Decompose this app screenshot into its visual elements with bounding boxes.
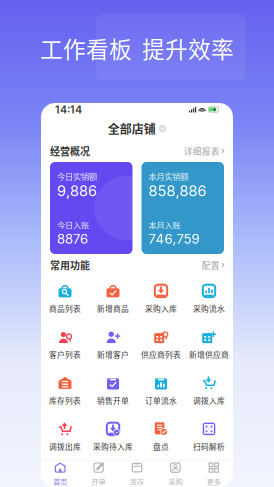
button[interactable]: 供应商列表 [137, 322, 185, 368]
staticText: 今日入账 [57, 219, 89, 231]
staticText: 商品列表 [49, 303, 81, 314]
staticText: 库存列表 [49, 395, 81, 406]
button[interactable]: 调拨出库 [41, 414, 89, 460]
staticText: 采购流水 [193, 303, 225, 314]
staticText: 采购入库 [145, 303, 177, 314]
staticText: 调拨入库 [193, 395, 225, 406]
button[interactable]: 配置 [202, 259, 224, 271]
button[interactable]: 本月实销额 [141, 162, 224, 254]
staticText: 采购待入库 [93, 441, 133, 452]
staticText: 销售开单 [97, 395, 129, 406]
staticText: 采购 [168, 476, 182, 486]
staticText: 首页 [53, 476, 67, 486]
button[interactable]: 销售开单 [89, 368, 137, 414]
staticText: 新增供应商 [189, 349, 229, 360]
staticText: 盘点 [153, 441, 169, 452]
button[interactable]: 采购待入库 [89, 414, 137, 460]
staticText: 新增客户 [97, 349, 129, 360]
staticText: 746,759 [148, 231, 199, 247]
button[interactable]: 新增商品 [89, 276, 137, 322]
button[interactable]: 订单流水 [137, 368, 185, 414]
staticText: 全部店铺 [108, 120, 156, 137]
button[interactable]: 开单 [79, 461, 118, 487]
button[interactable]: 更多 [195, 461, 233, 487]
button[interactable]: 库存 [118, 461, 156, 487]
staticText: 客户列表 [49, 349, 81, 360]
button[interactable]: 扫码解析 [185, 414, 233, 460]
staticText: 今日实销额 [57, 170, 97, 182]
staticText: 常用功能 [50, 258, 90, 272]
staticText: 开单 [92, 476, 106, 486]
staticText: 14:14 [55, 103, 82, 116]
button[interactable]: 调拨入库 [185, 368, 233, 414]
button[interactable]: 全部店铺 [41, 117, 233, 140]
staticText: 本月实销额 [148, 170, 188, 182]
staticText: 供应商列表 [141, 349, 181, 360]
button[interactable]: 详细报表 [184, 145, 224, 157]
button[interactable]: 新增客户 [89, 322, 137, 368]
staticText: 订单流水 [145, 395, 177, 406]
button[interactable]: 今日实销额 [50, 162, 132, 254]
button[interactable]: 采购流水 [185, 276, 233, 322]
staticText: 工作看板 提升效率 [40, 32, 234, 64]
staticText: 858,886 [148, 182, 206, 200]
staticText: 配置 [202, 259, 220, 271]
staticText: 9,886 [57, 182, 97, 200]
button[interactable]: 采购 [156, 461, 195, 487]
button[interactable]: 客户列表 [41, 322, 89, 368]
button[interactable]: 首页 [41, 461, 79, 487]
staticText: 本月入账 [148, 219, 180, 231]
staticText: 经营概况 [50, 144, 90, 158]
staticText: 更多 [207, 476, 221, 486]
staticText: 详细报表 [184, 145, 220, 157]
staticText: 调拨出库 [49, 441, 81, 452]
button[interactable]: 新增供应商 [185, 322, 233, 368]
button[interactable]: 库存列表 [41, 368, 89, 414]
button[interactable]: 商品列表 [41, 276, 89, 322]
staticText: 扫码解析 [193, 441, 225, 452]
staticText: 8876 [57, 231, 88, 247]
button[interactable]: 盘点 [137, 414, 185, 460]
staticText: 库存 [130, 476, 144, 486]
button[interactable]: 采购入库 [137, 276, 185, 322]
staticText: 新增商品 [97, 303, 129, 314]
